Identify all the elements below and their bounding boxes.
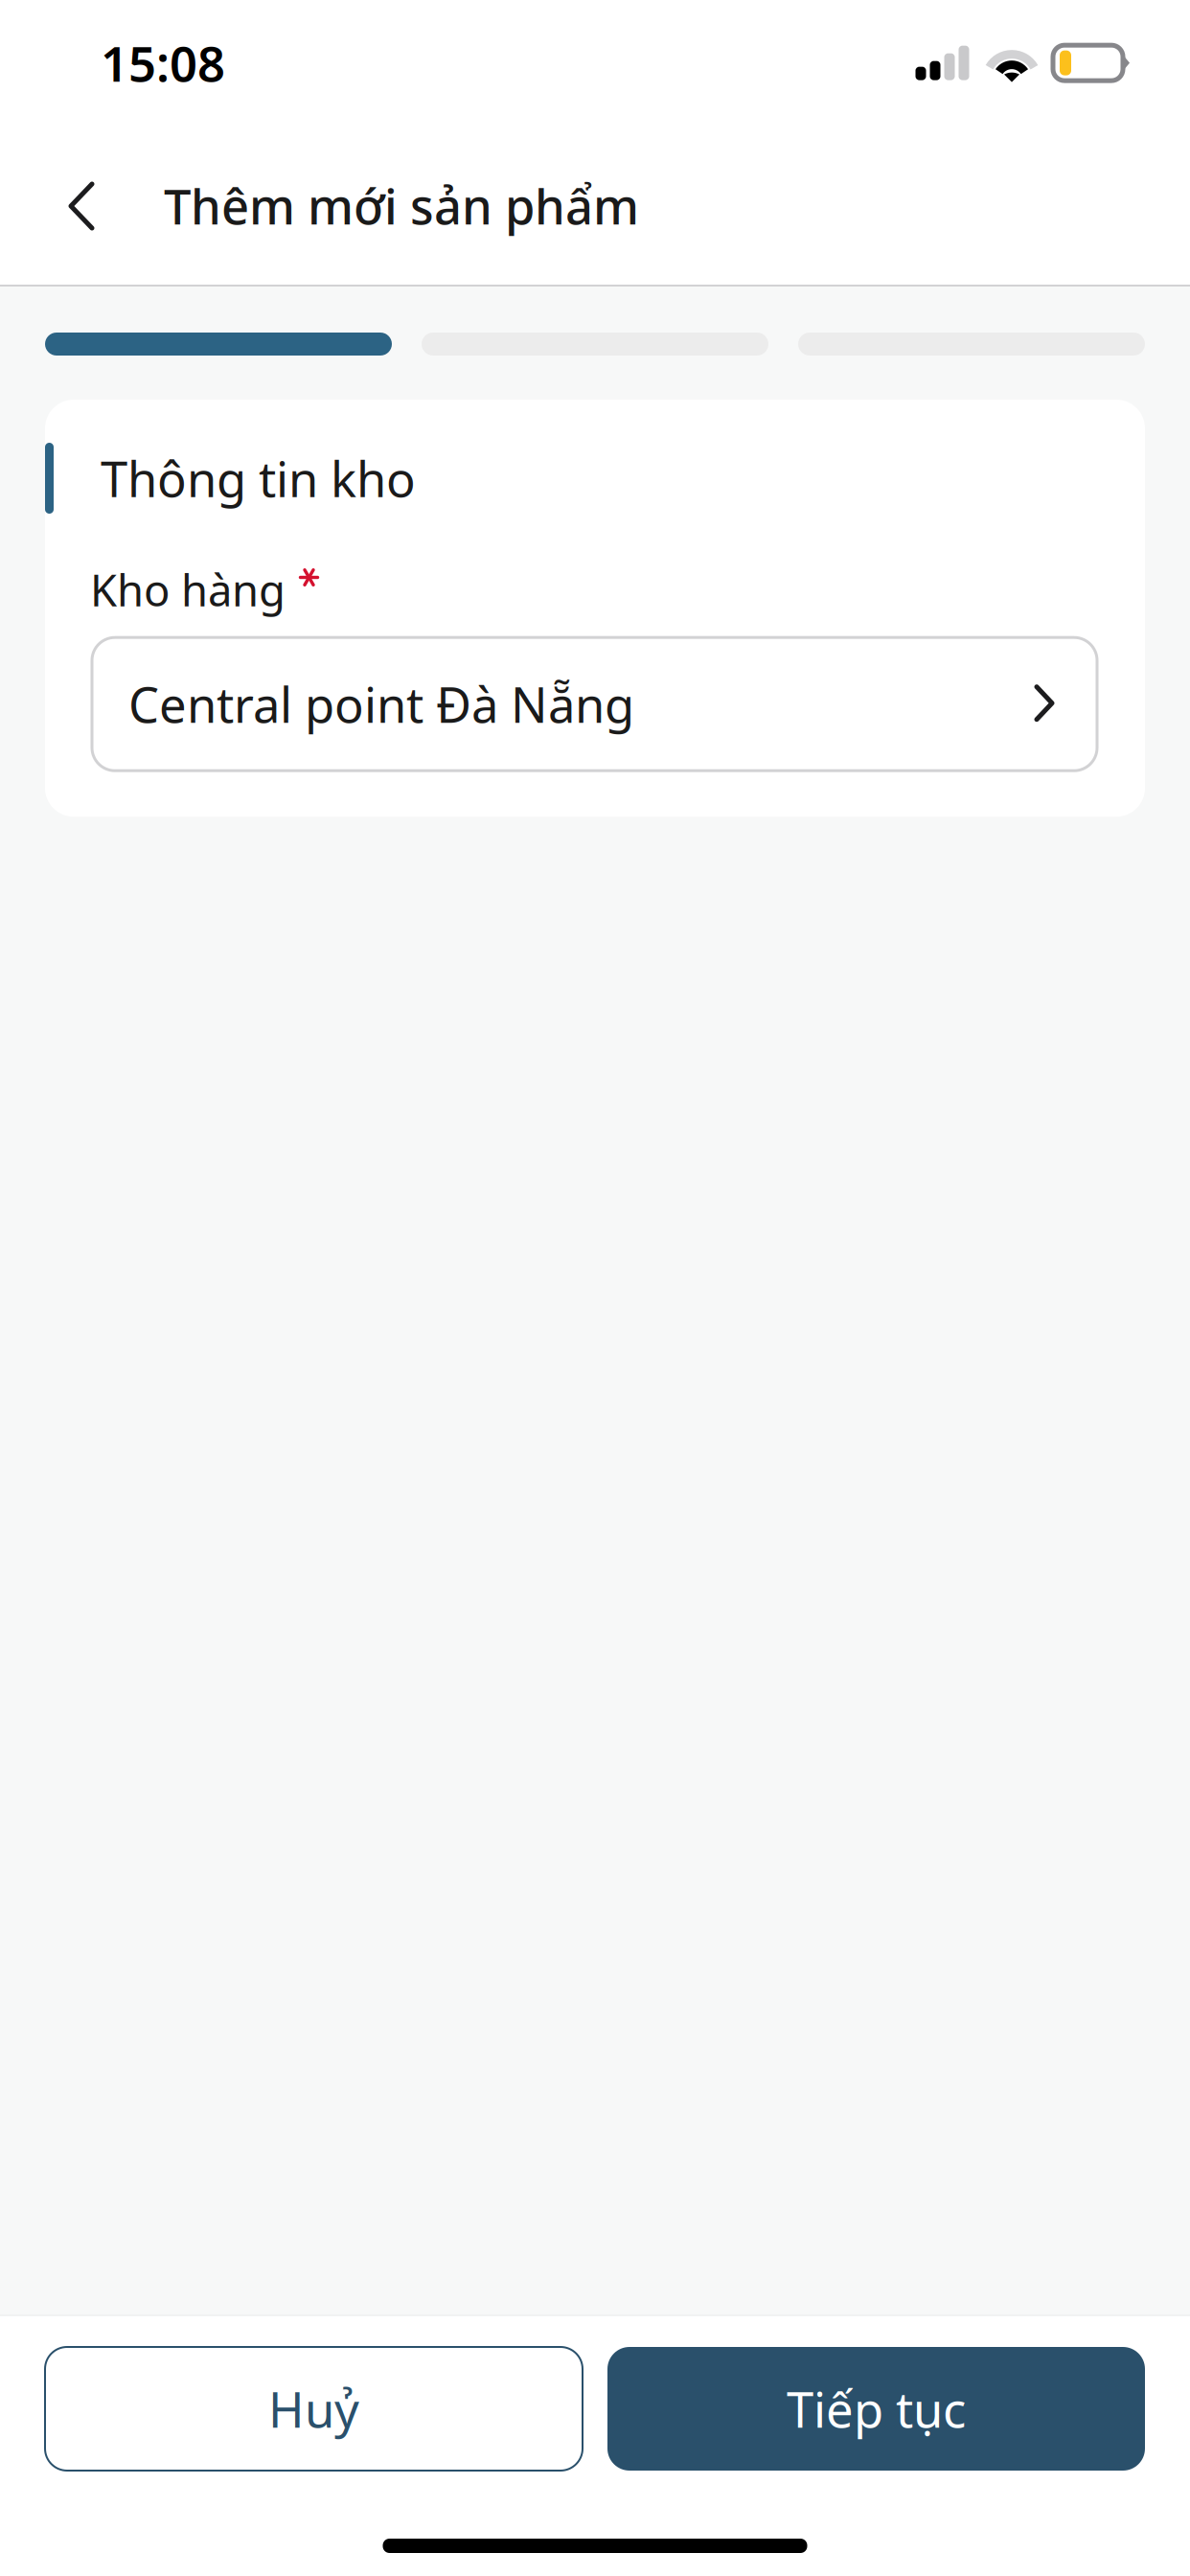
staticText: 15:08: [101, 31, 225, 95]
staticText: Tiếp tục: [787, 2377, 966, 2441]
button[interactable]: Central point Đà Nẵng: [92, 637, 1097, 771]
staticText: Thêm mới sản phẩm: [164, 173, 639, 238]
staticText: Thông tin kho: [101, 446, 416, 511]
button[interactable]: Back: [0, 126, 137, 285]
staticText: Kho hàng: [90, 561, 286, 618]
staticText: Huỷ: [268, 2377, 359, 2441]
button[interactable]: Huỷ: [45, 2347, 583, 2471]
staticText: Central point Đà Nẵng: [128, 672, 634, 736]
button[interactable]: Tiếp tục: [607, 2347, 1145, 2471]
